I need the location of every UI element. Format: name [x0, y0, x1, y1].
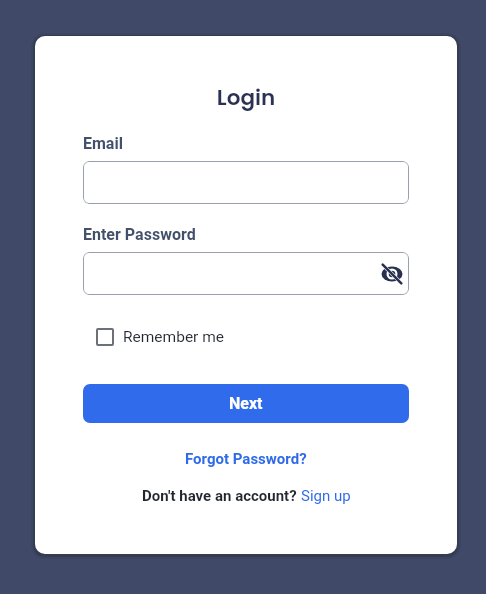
button[interactable]: Sign up — [301, 487, 351, 505]
button[interactable] — [83, 161, 409, 204]
staticText: Don't have an account? — [142, 487, 301, 505]
staticText: Email — [83, 134, 123, 153]
button[interactable]: Forgot Password? — [185, 450, 307, 468]
button[interactable]: Next — [83, 384, 409, 423]
button[interactable]: Remember me — [96, 328, 225, 346]
button[interactable] — [83, 252, 409, 295]
staticText: Next — [229, 394, 263, 413]
staticText: Login — [83, 82, 409, 112]
staticText: Remember me — [123, 328, 225, 346]
button[interactable] — [380, 262, 404, 286]
staticText: Enter Password — [83, 225, 196, 244]
